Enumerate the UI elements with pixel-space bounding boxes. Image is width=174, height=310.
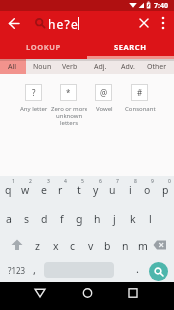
staticText: y xyxy=(93,183,99,197)
button[interactable]: Noun xyxy=(28,59,56,74)
staticText: he?e xyxy=(48,16,79,32)
staticText: Consonant xyxy=(125,105,156,113)
button[interactable] xyxy=(95,84,112,101)
staticText: . xyxy=(136,261,139,276)
button[interactable] xyxy=(139,18,149,28)
button[interactable]: e xyxy=(35,182,52,198)
button[interactable]: n xyxy=(117,238,134,254)
staticText: * xyxy=(66,87,71,98)
button[interactable]: m xyxy=(134,238,151,254)
button[interactable] xyxy=(0,59,26,74)
staticText: d xyxy=(41,212,48,226)
staticText: unknown xyxy=(56,112,83,120)
button[interactable]: Adj. xyxy=(86,59,114,74)
button[interactable]: l xyxy=(142,211,159,227)
button[interactable] xyxy=(25,84,42,101)
button[interactable]: Verb xyxy=(56,59,84,74)
staticText: 4 xyxy=(64,178,67,185)
button[interactable]: SEARCH xyxy=(87,36,174,57)
button[interactable]: . xyxy=(131,260,143,276)
staticText: 3 xyxy=(47,178,50,185)
button[interactable]: u xyxy=(104,182,121,198)
staticText: b xyxy=(104,239,111,253)
staticText: n xyxy=(122,239,129,253)
button[interactable]: o xyxy=(139,182,156,198)
button[interactable]: v xyxy=(82,238,99,254)
button[interactable] xyxy=(153,240,167,250)
staticText: h xyxy=(94,212,101,226)
staticText: l xyxy=(149,212,152,226)
staticText: LOOKUP xyxy=(26,42,61,52)
button[interactable] xyxy=(8,17,20,30)
button[interactable]: s xyxy=(18,211,35,227)
staticText: g xyxy=(76,212,83,226)
staticText: k xyxy=(130,212,136,226)
button[interactable]: r xyxy=(52,182,69,198)
button[interactable]: f xyxy=(53,211,70,227)
button[interactable]: j xyxy=(106,211,123,227)
staticText: 2 xyxy=(29,178,32,185)
staticText: f xyxy=(60,212,64,226)
staticText: Other xyxy=(147,62,167,72)
staticText: r xyxy=(58,183,63,197)
staticText: 0 xyxy=(168,178,171,185)
staticText: ? xyxy=(32,87,36,98)
button[interactable] xyxy=(34,288,46,298)
button[interactable]: c xyxy=(64,238,81,254)
button[interactable] xyxy=(131,84,148,101)
button[interactable] xyxy=(60,84,77,101)
staticText: j xyxy=(113,212,116,226)
button[interactable] xyxy=(149,262,168,281)
staticText: ?123 xyxy=(8,265,26,276)
staticText: Noun xyxy=(33,62,52,72)
staticText: Adj. xyxy=(94,62,107,72)
button[interactable]: ?123 xyxy=(4,263,30,277)
staticText: p xyxy=(162,183,169,197)
button[interactable] xyxy=(82,288,93,298)
button[interactable]: g xyxy=(71,211,88,227)
staticText: i xyxy=(129,183,132,197)
button[interactable]: i xyxy=(122,182,139,198)
staticText: 6 xyxy=(99,178,102,185)
staticText: letters xyxy=(60,119,79,127)
button[interactable]: Other xyxy=(143,59,171,74)
button[interactable]: All xyxy=(0,59,26,74)
button[interactable]: b xyxy=(99,238,116,254)
button[interactable]: , xyxy=(28,261,40,277)
button[interactable]: a xyxy=(0,211,17,227)
staticText: Any letter xyxy=(20,105,48,113)
staticText: # xyxy=(137,87,143,98)
button[interactable]: Adv. xyxy=(114,59,142,74)
staticText: x xyxy=(53,239,59,253)
button[interactable]: y xyxy=(87,182,104,198)
button[interactable]: k xyxy=(124,211,141,227)
staticText: o xyxy=(144,183,151,197)
staticText: w xyxy=(21,183,30,197)
button[interactable]: h xyxy=(89,211,106,227)
staticText: Vowel xyxy=(96,105,113,113)
button[interactable]: w xyxy=(17,182,34,198)
staticText: t xyxy=(77,183,81,197)
staticText: 5 xyxy=(81,178,84,185)
staticText: All xyxy=(8,62,17,72)
button[interactable]: z xyxy=(29,238,46,254)
button[interactable]: LOOKUP xyxy=(0,36,87,57)
staticText: 7 xyxy=(116,178,119,185)
staticText: SEARCH xyxy=(114,42,147,52)
button[interactable]: x xyxy=(47,238,64,254)
button[interactable]: d xyxy=(36,211,53,227)
button[interactable]: he?e xyxy=(48,11,133,36)
staticText: Adv. xyxy=(121,62,135,72)
button[interactable] xyxy=(10,239,24,252)
button[interactable]: q xyxy=(0,182,17,198)
staticText: c xyxy=(70,239,76,253)
staticText: Verb xyxy=(62,62,78,72)
staticText: @ xyxy=(100,87,108,98)
button[interactable] xyxy=(160,16,166,30)
button[interactable]: p xyxy=(157,182,174,198)
staticText: 1 xyxy=(12,178,15,185)
button[interactable] xyxy=(128,288,138,298)
button[interactable]: t xyxy=(70,182,87,198)
staticText: 7:40 xyxy=(154,1,168,11)
